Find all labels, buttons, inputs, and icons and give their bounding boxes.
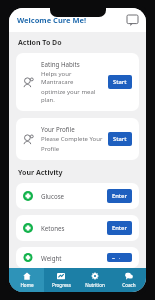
staticText: Start [113,78,127,86]
button[interactable]: Nutrition [78,268,112,292]
staticText: Profile [41,145,60,153]
staticText: optimize your meal plan. [41,88,104,104]
button[interactable]: Eating Habits [16,53,139,111]
button[interactable]: Enter [107,253,132,262]
button[interactable]: Start [108,132,132,146]
staticText: Coach [122,282,136,288]
staticText: Start [113,135,127,143]
button[interactable]: Weight [16,247,139,268]
staticText: Progress [52,282,71,288]
staticText: Please Complete Your [41,135,103,143]
button[interactable]: Coach [112,268,146,292]
staticText: Weight [41,254,107,262]
button[interactable]: Enter [107,221,132,235]
staticText: Enter [112,224,127,232]
staticText: Your Activity [18,168,63,178]
button[interactable]: Ketones [16,215,139,241]
button[interactable]: Start [108,75,132,89]
staticText: Glucose [41,192,107,200]
staticText: Nutrition [85,282,105,288]
staticText: Eating Habits [41,60,80,68]
staticText: Home [20,282,34,288]
staticText: Action To Do [18,38,62,48]
button[interactable]: Progress [44,268,78,292]
button[interactable]: Home [9,268,44,292]
staticText: Helps your Mantracare [41,70,104,86]
button[interactable]: Enter [107,189,132,203]
staticText: Enter [112,256,127,259]
staticText: Your Profile [41,125,75,133]
button[interactable]: Messages [125,13,139,27]
button[interactable]: Glucose [16,183,139,209]
staticText: Welcome Cure Me! [17,15,87,25]
button[interactable]: Your Profile [16,118,139,160]
staticText: Enter [112,192,127,200]
staticText: Ketones [41,224,107,232]
